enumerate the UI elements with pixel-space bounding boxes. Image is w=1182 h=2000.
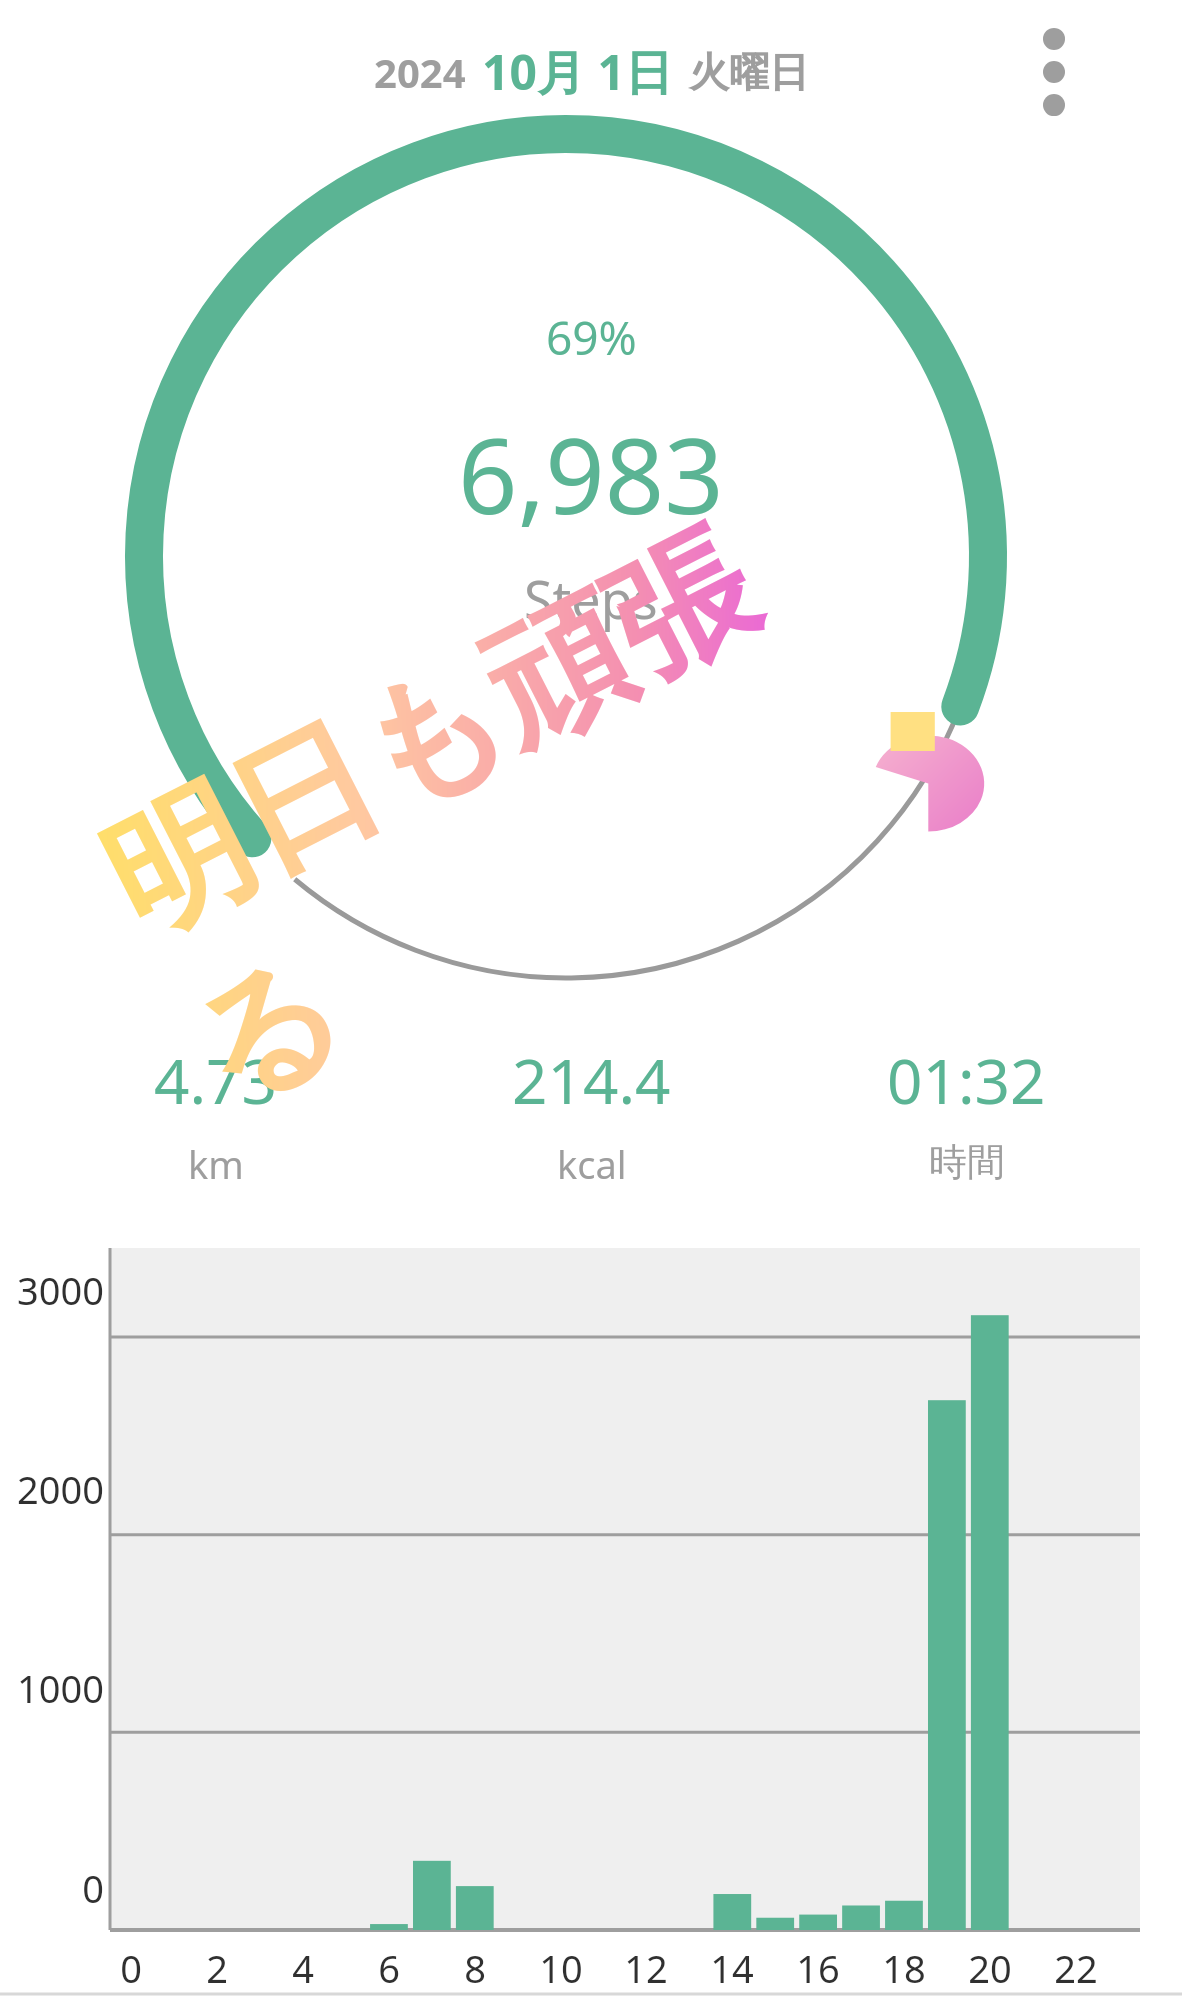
staticText: 20 (964, 1942, 1016, 1994)
button[interactable]: 4.73 (28, 1038, 404, 1190)
staticText: 明日も頑張る (76, 470, 920, 1141)
staticText: 10 (535, 1942, 587, 1994)
staticText: 10月 1日 (482, 39, 673, 105)
staticText: kcal (557, 1138, 627, 1190)
staticText: 14 (706, 1942, 758, 1994)
button[interactable]: 214.4 (404, 1038, 779, 1190)
staticText: 6,983 (458, 403, 724, 545)
staticText: 時間 (929, 1138, 1005, 1186)
staticText: 3000 (0, 1264, 104, 1316)
button[interactable]: 01:32 (779, 1038, 1154, 1186)
staticText: 0 (105, 1942, 157, 1994)
staticText: Steps (524, 563, 658, 634)
staticText: 2 (191, 1942, 243, 1994)
staticText: 4 (277, 1942, 329, 1994)
staticText: 4.73 (154, 1038, 278, 1122)
staticText: 火曜日 (689, 47, 809, 97)
staticText: 22 (1050, 1942, 1102, 1994)
staticText: 18 (878, 1942, 930, 1994)
button[interactable]: More options (1022, 26, 1086, 118)
staticText: km (188, 1138, 244, 1190)
staticText: 8 (449, 1942, 501, 1994)
staticText: 214.4 (512, 1038, 671, 1122)
staticText: 2000 (0, 1463, 104, 1515)
staticText: 16 (792, 1942, 844, 1994)
staticText: 01:32 (887, 1038, 1046, 1122)
staticText: 12 (620, 1942, 672, 1994)
staticText: 0 (0, 1862, 104, 1914)
staticText: 2024 (374, 45, 466, 99)
staticText: 69% (546, 306, 637, 369)
staticText: 1000 (0, 1662, 104, 1714)
staticText: 6 (363, 1942, 415, 1994)
